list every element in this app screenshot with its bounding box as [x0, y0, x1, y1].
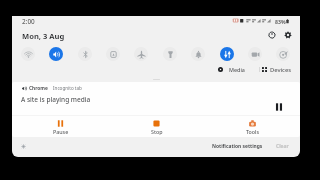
- staticText: 2:00: [22, 17, 35, 26]
- staticText: Pause: [53, 128, 69, 135]
- button[interactable]: Bluetooth: [75, 44, 95, 64]
- button[interactable]: Wi-Fi: [18, 44, 38, 64]
- staticText: Media: [229, 66, 245, 73]
- button[interactable]: Brightness: [18, 141, 29, 152]
- button[interactable]: Sound: [46, 44, 66, 64]
- button[interactable]: Location: [273, 44, 293, 64]
- button[interactable]: Pause: [47, 118, 74, 136]
- button[interactable]: Auto rotate: [103, 44, 123, 64]
- button[interactable]: Settings: [282, 29, 294, 41]
- staticText: A site is playing media: [21, 95, 91, 104]
- button[interactable]: Pause: [269, 97, 289, 117]
- button[interactable]: Tools: [239, 118, 266, 136]
- button[interactable]: Screen record: [245, 44, 265, 64]
- button[interactable]: Flight mode: [131, 44, 151, 64]
- button[interactable]: Stop: [143, 118, 170, 136]
- staticText: Incognito tab: [53, 85, 82, 91]
- staticText: Devices: [270, 66, 292, 74]
- staticText: 83%: [275, 18, 286, 25]
- staticText: Chrome: [29, 85, 48, 92]
- button[interactable]: Power: [266, 29, 278, 41]
- button[interactable]: Flashlight: [160, 44, 180, 64]
- staticText: Mon, 3 Aug: [22, 31, 65, 41]
- staticText: Stop: [151, 128, 163, 135]
- button[interactable]: Notification settings: [212, 143, 263, 150]
- button[interactable]: Clear: [276, 143, 289, 150]
- button[interactable]: Do not disturb: [188, 44, 208, 64]
- button[interactable]: Devices: [262, 64, 292, 75]
- staticText: Tools: [246, 128, 260, 135]
- button[interactable]: Media: [218, 64, 245, 75]
- button[interactable]: Mobile data: [217, 44, 237, 64]
